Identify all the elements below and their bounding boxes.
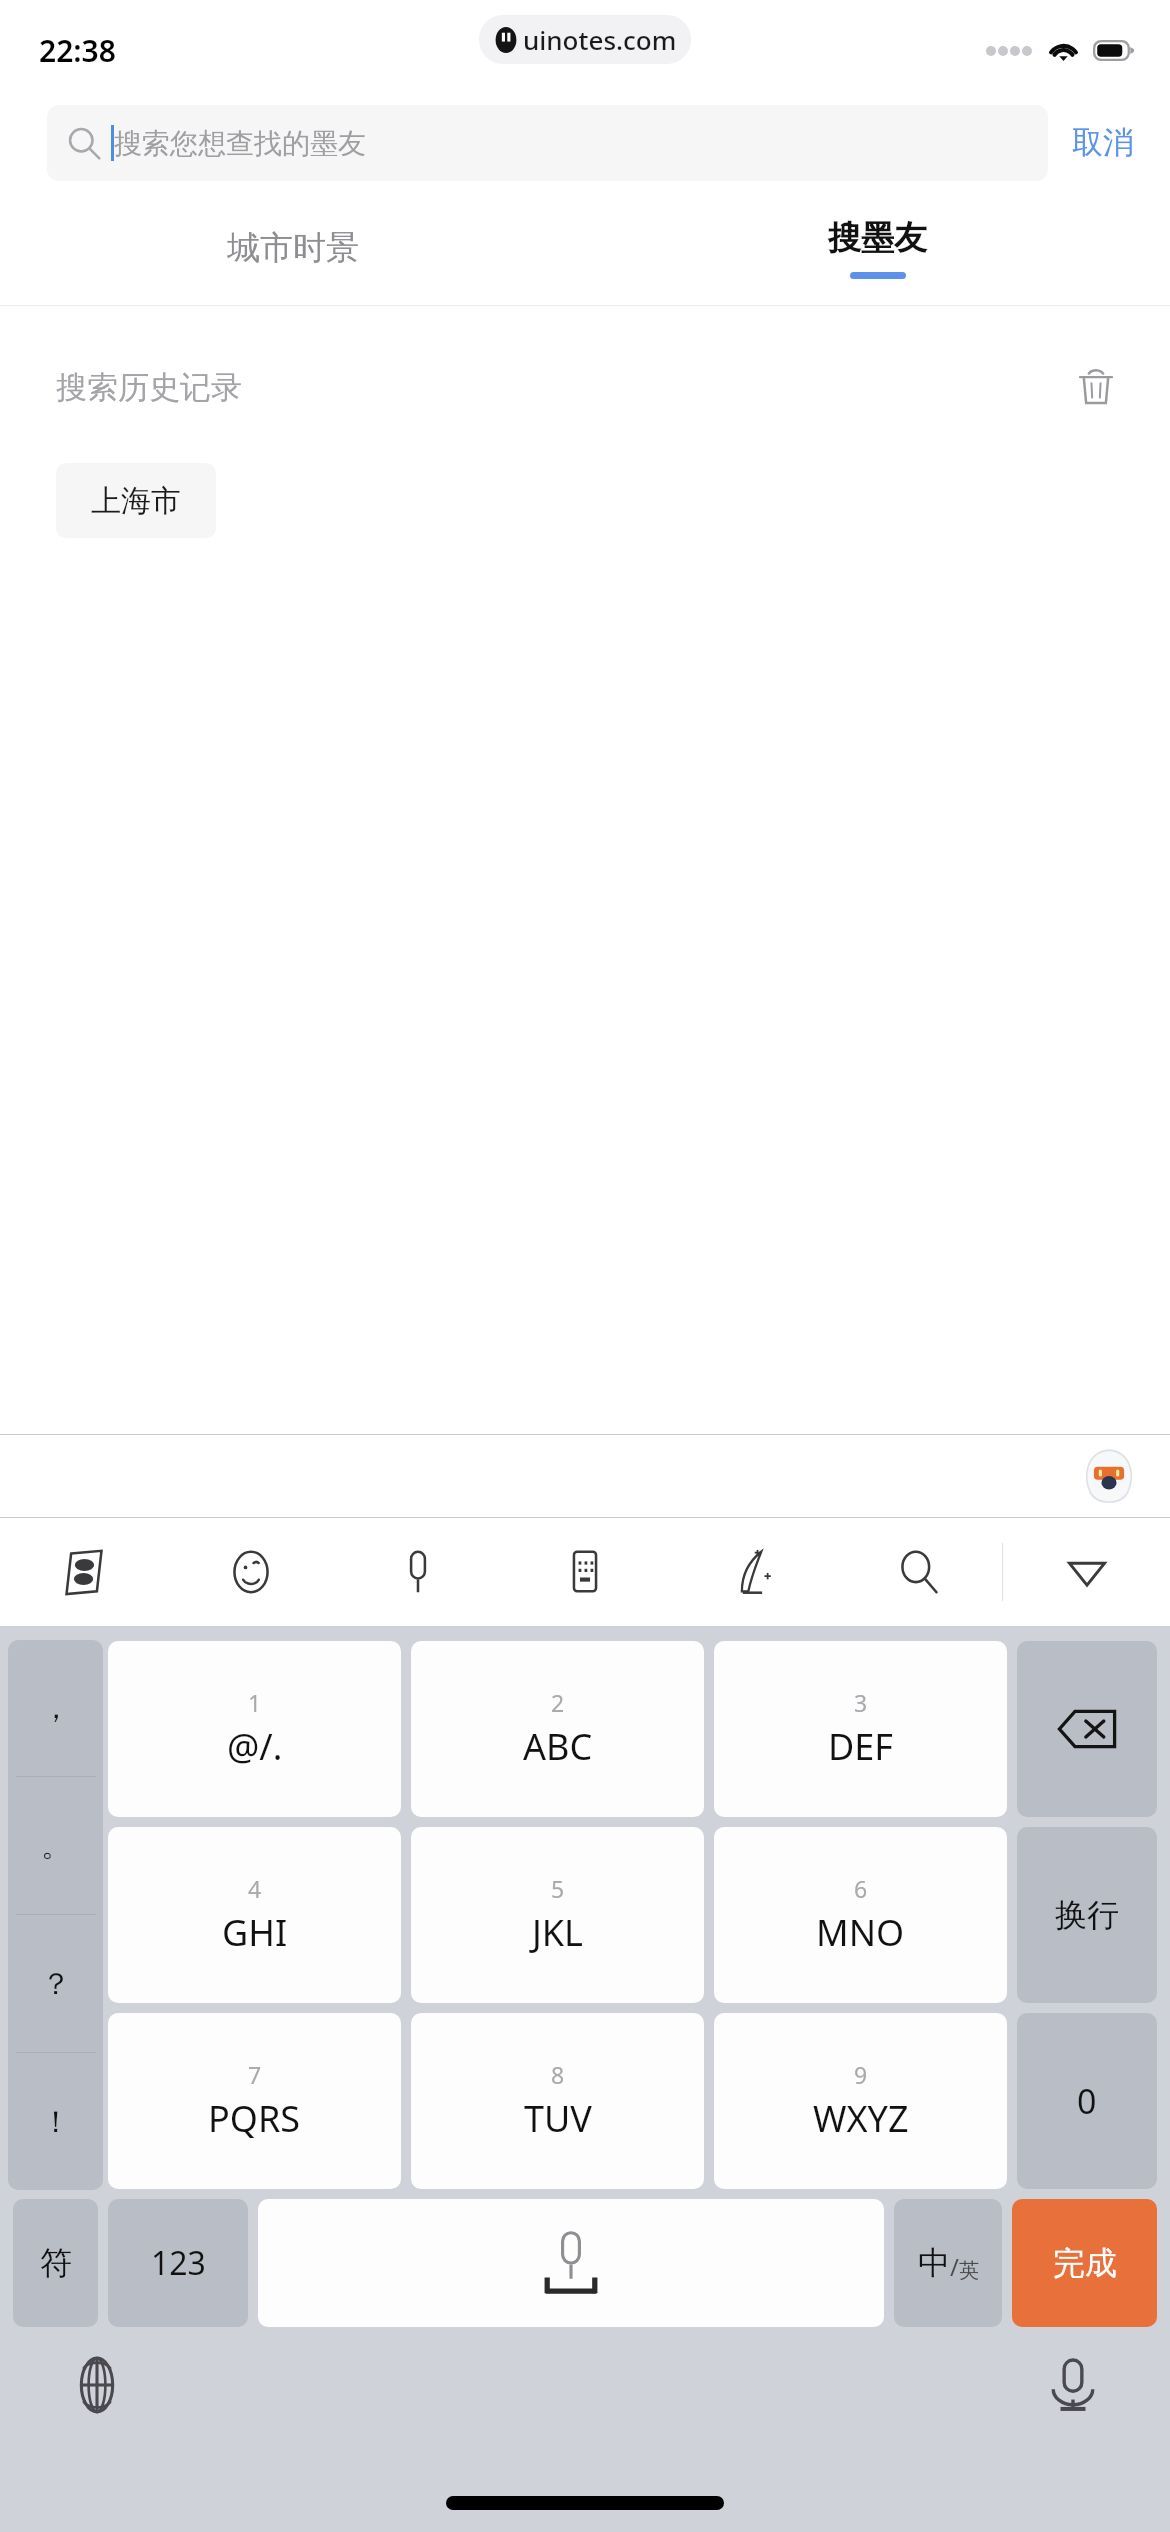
button[interactable]: 123 [108,2199,248,2327]
staticText: 完成 [1053,2243,1117,2283]
button[interactable]: 中 [894,2199,1002,2327]
staticText: ， [41,1689,71,1727]
button[interactable]: 1 [108,1641,401,1817]
staticText: 换行 [1055,1895,1119,1935]
staticText: 22:38 [39,30,116,71]
staticText: 5 [551,1873,565,1904]
staticText: @/. [227,1722,283,1771]
staticText: JKL [532,1908,583,1957]
staticText: TUV [524,2094,592,2143]
button[interactable]: ， [8,1640,103,2190]
staticText: 7 [248,2059,262,2090]
staticText: ！ [41,2103,71,2141]
staticText: 9 [854,2059,868,2090]
staticText: 8 [551,2059,565,2090]
staticText: DEF [828,1722,893,1771]
staticText: 3 [854,1687,868,1718]
staticText: 城市时景 [227,227,359,269]
button[interactable]: Emoji [167,1518,334,1626]
staticText: 搜索您想查找的墨友 [114,126,366,161]
button[interactable]: 上海市 [56,463,216,538]
staticText: ABC [523,1722,593,1771]
button[interactable]: Change language [66,2354,128,2416]
staticText: 1 [248,1687,262,1718]
button[interactable]: Hide keyboard [1003,1518,1170,1626]
button[interactable]: Voice input [334,1518,501,1626]
staticText: 上海市 [91,482,181,520]
button[interactable]: 换行 [1017,1827,1157,2003]
staticText: uinotes.com [523,22,677,57]
button[interactable]: 4 [108,1827,401,2003]
button[interactable]: Space [258,2199,884,2327]
button[interactable]: Backspace [1017,1641,1157,1817]
button[interactable]: 搜墨友 [585,190,1170,305]
button[interactable]: Clear history [1070,361,1122,413]
button[interactable]: 7 [108,2013,401,2189]
staticText: ？ [41,1965,71,2003]
button[interactable]: 0 [1017,2013,1157,2189]
button[interactable]: 搜索您想查找的墨友 [47,105,1048,181]
staticText: WXYZ [813,2094,909,2143]
button[interactable]: 取消 [1048,115,1134,170]
staticText: 123 [151,2241,206,2285]
button[interactable]: 9 [714,2013,1007,2189]
staticText: 。 [41,1827,71,1865]
button[interactable]: Search [835,1518,1002,1626]
staticText: 搜索历史记录 [56,368,242,407]
staticText: 中 [918,2243,950,2283]
staticText: 符 [40,2243,72,2283]
staticText: MNO [816,1908,905,1957]
button[interactable]: 城市时景 [0,190,585,305]
staticText: 英 [959,2258,979,2283]
staticText: 4 [248,1873,262,1904]
button[interactable]: 符 [13,2199,98,2327]
staticText: 0 [1077,2078,1097,2124]
button[interactable]: Dictation [1042,2354,1104,2416]
button[interactable]: 3 [714,1641,1007,1817]
button[interactable]: Handwriting [668,1518,835,1626]
button[interactable]: 完成 [1012,2199,1157,2327]
button[interactable]: 2 [411,1641,704,1817]
staticText: 搜墨友 [828,217,927,259]
button[interactable]: Keyboard settings [501,1518,668,1626]
button[interactable]: 8 [411,2013,704,2189]
button[interactable]: 5 [411,1827,704,2003]
button[interactable]: Sogou [0,1518,167,1626]
staticText: 2 [551,1687,565,1718]
staticText: PQRS [208,2094,301,2143]
staticText: 取消 [1072,123,1134,162]
button[interactable]: 6 [714,1827,1007,2003]
staticText: 6 [854,1873,868,1904]
button[interactable]: Sogou assistant [1080,1447,1138,1505]
staticText: GHI [222,1908,288,1957]
staticText: / [950,2250,959,2283]
